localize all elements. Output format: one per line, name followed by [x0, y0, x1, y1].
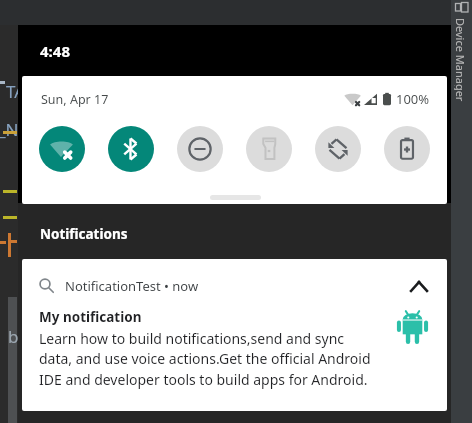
- staticText: Notifications: [40, 225, 128, 243]
- button[interactable]: Flashlight: [246, 126, 292, 172]
- staticText: TA: [6, 80, 26, 103]
- button[interactable]: Collapse notification: [403, 270, 435, 302]
- staticText: _N: [0, 118, 19, 141]
- button[interactable]: Auto-rotate: [315, 126, 361, 172]
- button[interactable]: Bluetooth: [108, 126, 154, 172]
- button[interactable]: NotificationTest • now: [22, 268, 447, 303]
- staticText: 4:48: [40, 41, 70, 61]
- button[interactable]: Wi-Fi, off: [39, 126, 85, 172]
- button[interactable]: Battery Saver: [384, 126, 430, 172]
- button[interactable]: Do not disturb: [177, 126, 223, 172]
- staticText: Device Manager: [454, 18, 468, 102]
- staticText: My notification: [39, 308, 142, 326]
- staticText: NotificationTest • now: [65, 277, 199, 295]
- staticText: Sun, Apr 17: [41, 91, 109, 108]
- button[interactable]: Device Manager tool window: [451, 0, 472, 423]
- staticText: b: [8, 325, 19, 348]
- staticText: Learn how to build notifications,send an…: [39, 329, 371, 389]
- staticText: 100%: [396, 90, 430, 108]
